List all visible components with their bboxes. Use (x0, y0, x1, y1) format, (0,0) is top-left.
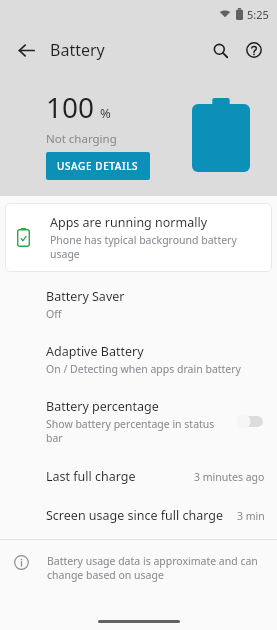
staticText: Show battery percentage in status bar (46, 417, 228, 445)
staticText: Off (46, 307, 62, 321)
button[interactable]: Last full charge (0, 465, 277, 488)
staticText: 5:25 (247, 7, 269, 22)
button[interactable]: Screen usage since full charge (0, 504, 277, 527)
button[interactable]: Help (237, 33, 271, 67)
staticText: Last full charge (46, 468, 194, 485)
button[interactable]: Back (8, 32, 44, 68)
staticText: 3 minutes ago (194, 470, 265, 484)
staticText: Battery (50, 39, 105, 61)
staticText: Adaptive Battery (46, 343, 144, 360)
button[interactable]: Adaptive Battery (0, 339, 277, 380)
staticText: % (100, 104, 111, 122)
staticText: USAGE DETAILS (57, 159, 139, 173)
staticText: 100 (46, 88, 95, 126)
staticText: Battery usage data is approximate and ca… (47, 554, 261, 582)
button[interactable]: Apps are running normally (5, 203, 272, 272)
staticText: Not charging (46, 131, 117, 147)
button[interactable]: USAGE DETAILS (46, 152, 150, 180)
staticText: Apps are running normally (50, 214, 208, 231)
staticText: Battery Saver (46, 288, 125, 305)
button[interactable]: Battery Saver (0, 284, 277, 325)
staticText: On / Detecting when apps drain battery (46, 362, 241, 376)
button[interactable]: Battery percentage (0, 394, 277, 449)
staticText: Screen usage since full charge (46, 507, 237, 524)
staticText: 3 min (237, 509, 265, 523)
staticText: Battery percentage (46, 398, 159, 415)
button[interactable]: Search (203, 33, 237, 67)
staticText: Phone has typical background battery usa… (50, 233, 260, 261)
